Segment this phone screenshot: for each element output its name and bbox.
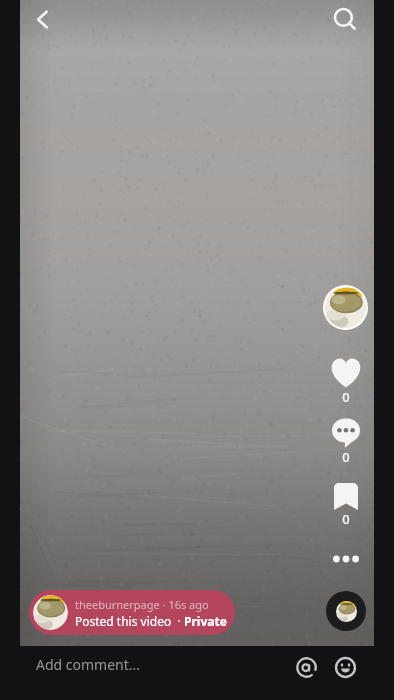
button[interactable]: More options — [320, 540, 371, 578]
button[interactable]: Emoji — [325, 647, 365, 687]
button[interactable]: Profile — [323, 285, 368, 330]
button[interactable]: Back — [23, 0, 61, 38]
button[interactable]: Search — [326, 0, 364, 38]
staticText: 0 — [342, 388, 350, 406]
button[interactable]: Music — [326, 591, 366, 631]
staticText: Add comment... — [36, 655, 141, 674]
staticText: theeburnerpage · 16s ago — [75, 597, 209, 612]
button[interactable]: Add comment... — [16, 646, 280, 682]
button[interactable]: Like — [320, 357, 371, 406]
button[interactable]: theeburnerpage · 16s ago — [29, 590, 235, 635]
staticText: 0 — [342, 448, 350, 466]
staticText: 0 — [342, 510, 350, 528]
button[interactable]: Comments — [320, 418, 371, 466]
staticText: Private — [184, 613, 227, 629]
button[interactable]: Mention someone — [286, 647, 326, 687]
button[interactable]: Save — [320, 483, 371, 528]
staticText: Posted this video · — [75, 613, 184, 629]
